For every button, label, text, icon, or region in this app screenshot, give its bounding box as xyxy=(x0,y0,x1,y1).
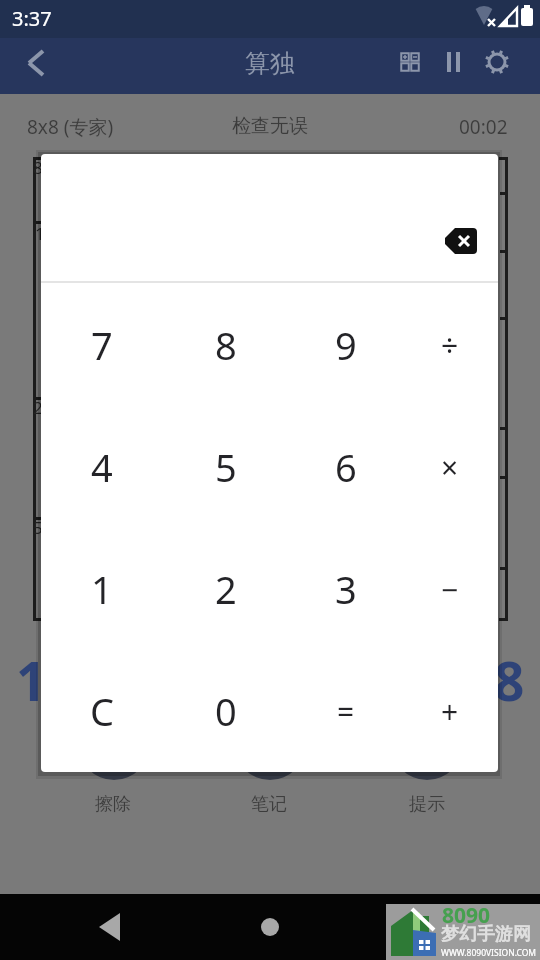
staticText: 提示 xyxy=(409,793,445,816)
button[interactable]: 1 xyxy=(64,559,140,619)
staticText: 5 xyxy=(33,516,43,539)
button[interactable] xyxy=(392,44,428,80)
staticText: 9 xyxy=(335,319,357,371)
button[interactable] xyxy=(85,902,135,952)
button[interactable]: + xyxy=(412,681,488,741)
staticText: 4 xyxy=(91,441,113,493)
staticText: 3 xyxy=(335,563,357,615)
staticText: 6 xyxy=(335,441,357,493)
staticText: 笔记 xyxy=(251,793,287,816)
staticText: 0 xyxy=(215,685,237,737)
button[interactable] xyxy=(479,44,515,80)
staticText: 7 xyxy=(91,319,113,371)
staticText: 8 xyxy=(494,644,525,716)
staticText: 2 xyxy=(215,563,237,615)
staticText: 1 xyxy=(35,222,45,245)
staticText: − xyxy=(441,569,459,610)
staticText: 8090 xyxy=(442,901,491,930)
staticText: C xyxy=(90,685,115,737)
button[interactable] xyxy=(0,38,56,94)
staticText: 5 xyxy=(215,441,237,493)
staticText: 检查无误 xyxy=(0,114,540,138)
button[interactable]: ÷ xyxy=(412,315,488,375)
button[interactable]: 3 xyxy=(308,559,384,619)
staticText: 算独 xyxy=(245,48,295,79)
button[interactable] xyxy=(429,209,493,273)
staticText: = xyxy=(337,691,355,732)
staticText: 1 xyxy=(91,563,113,615)
button[interactable]: 6 xyxy=(308,437,384,497)
staticText: + xyxy=(441,691,459,732)
staticText: 擦除 xyxy=(95,793,131,816)
button[interactable]: 5 xyxy=(188,437,264,497)
staticText: 8 xyxy=(215,319,237,371)
button[interactable]: 4 xyxy=(64,437,140,497)
staticText: 00:02 xyxy=(459,114,508,140)
button[interactable] xyxy=(245,902,295,952)
button[interactable]: 2 xyxy=(188,559,264,619)
staticText: 3:37 xyxy=(12,5,52,32)
button[interactable]: = xyxy=(308,681,384,741)
button[interactable]: 7 xyxy=(64,315,140,375)
staticText: 8 xyxy=(33,156,43,179)
button[interactable]: 0 xyxy=(188,681,264,741)
button[interactable]: × xyxy=(412,437,488,497)
button[interactable]: 9 xyxy=(308,315,384,375)
staticText: × xyxy=(441,447,459,488)
button[interactable] xyxy=(435,44,471,80)
button[interactable]: − xyxy=(412,559,488,619)
staticText: 2 xyxy=(33,396,43,419)
staticText: 1 xyxy=(16,644,47,716)
button[interactable]: 8 xyxy=(188,315,264,375)
staticText: 8x8 (专家) xyxy=(27,114,114,140)
staticText: WWW.8090VISION.COM xyxy=(441,947,537,959)
staticText: 梦幻手游网 xyxy=(441,923,531,946)
button[interactable]: C xyxy=(64,681,140,741)
staticText: ÷ xyxy=(441,325,459,366)
